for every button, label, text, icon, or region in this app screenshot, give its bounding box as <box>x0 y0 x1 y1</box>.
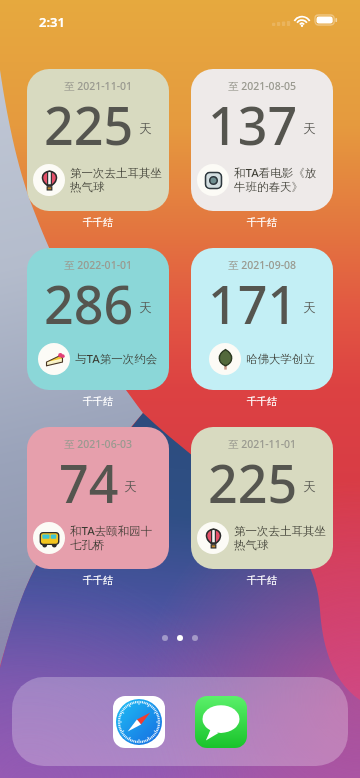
staticText: 至 2021-09-08 <box>228 258 297 272</box>
staticText: 至 2021-11-01 <box>64 79 133 93</box>
staticText: 千千结 <box>83 216 113 229</box>
button[interactable]: Safari <box>113 696 165 748</box>
staticText: 千千结 <box>247 574 277 587</box>
staticText: 与TA第一次约会 <box>75 351 158 367</box>
staticText: 千千结 <box>83 395 113 408</box>
button[interactable]: 至 2022-01-01 <box>27 248 169 390</box>
button[interactable]: 至 2021-08-05 <box>191 69 333 211</box>
button[interactable]: 至 2021-11-01 <box>191 427 333 569</box>
staticText: 和TA看电影《放牛班的春天》 <box>234 165 327 195</box>
staticText: 171 <box>208 268 298 339</box>
staticText: 哈佛大学创立 <box>246 352 315 366</box>
staticText: 137 <box>208 89 298 160</box>
staticText: 225 <box>208 447 298 518</box>
button[interactable]: 至 2021-09-08 <box>191 248 333 390</box>
button[interactable]: 至 2021-11-01 <box>27 69 169 211</box>
staticText: 天 <box>303 300 316 316</box>
staticText: 和TA去颐和园十七孔桥 <box>70 523 163 553</box>
staticText: 至 2022-01-01 <box>64 258 133 272</box>
staticText: 天 <box>303 121 316 137</box>
staticText: 74 <box>59 447 119 518</box>
staticText: 225 <box>44 89 134 160</box>
staticText: 千千结 <box>247 216 277 229</box>
staticText: 至 2021-11-01 <box>228 437 297 451</box>
staticText: 天 <box>124 479 137 495</box>
staticText: 至 2021-08-05 <box>228 79 297 93</box>
staticText: 天 <box>139 121 152 137</box>
staticText: 至 2021-06-03 <box>64 437 133 451</box>
staticText: 天 <box>139 300 152 316</box>
staticText: 286 <box>44 268 134 339</box>
staticText: 第一次去土耳其坐热气球 <box>70 166 163 195</box>
staticText: 天 <box>303 479 316 495</box>
staticText: 千千结 <box>247 395 277 408</box>
staticText: 2:31 <box>39 13 65 31</box>
staticText: 千千结 <box>83 574 113 587</box>
button[interactable]: 至 2021-06-03 <box>27 427 169 569</box>
staticText: 第一次去土耳其坐热气球 <box>234 524 327 553</box>
button[interactable]: Messages <box>195 696 247 748</box>
